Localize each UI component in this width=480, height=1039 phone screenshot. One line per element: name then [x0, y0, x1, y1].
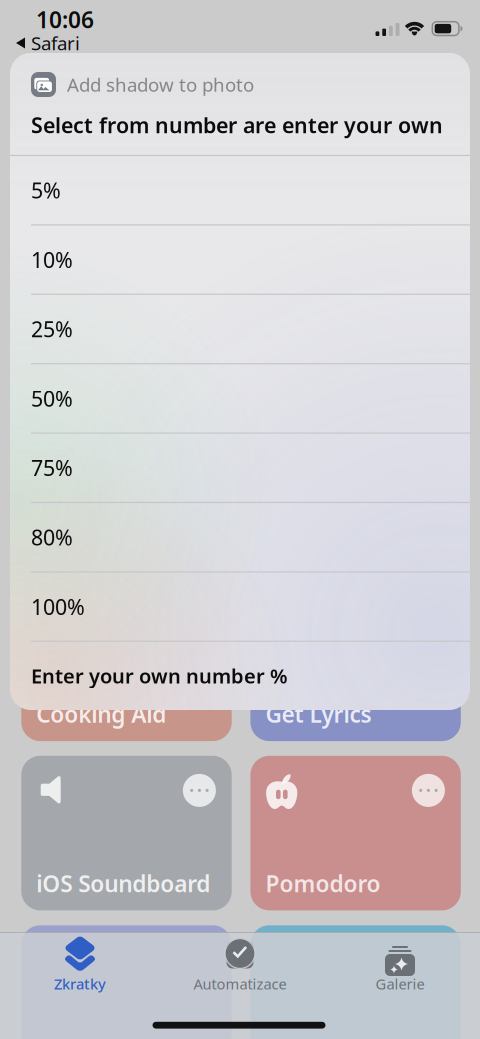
staticText: 50% — [31, 384, 73, 412]
button[interactable]: 25% — [10, 294, 470, 364]
button[interactable]: Zkratky — [4, 938, 156, 996]
staticText: 5% — [31, 176, 61, 204]
staticText: Cooking Aid — [36, 699, 166, 729]
button[interactable]: Automatizace — [164, 938, 316, 996]
button[interactable]: 75% — [10, 433, 470, 502]
button[interactable]: 80% — [10, 502, 470, 572]
staticText: Select from number are enter your own — [31, 111, 443, 139]
staticText: Get Lyrics — [265, 699, 371, 729]
staticText: Galerie — [375, 974, 424, 993]
staticText: 25% — [31, 315, 73, 343]
staticText: Add shadow to photo — [67, 72, 254, 97]
staticText: 75% — [31, 454, 73, 482]
staticText: 10:06 — [36, 4, 94, 34]
staticText: 100% — [31, 592, 85, 621]
button[interactable]: Enter your own number % — [10, 641, 470, 710]
button[interactable]: Galerie — [324, 938, 476, 996]
staticText: iOS Soundboard — [36, 868, 210, 898]
button[interactable]: Safari — [0, 32, 480, 54]
staticText: Enter your own number % — [31, 662, 288, 689]
button[interactable]: 10% — [10, 225, 470, 294]
staticText: Pomodoro — [265, 868, 380, 898]
button[interactable]: 5% — [10, 155, 470, 225]
button[interactable]: 100% — [10, 572, 470, 641]
staticText: 10% — [31, 245, 73, 274]
staticText: Safari — [31, 31, 80, 55]
staticText: Automatizace — [193, 974, 286, 993]
staticText: Zkratky — [54, 974, 106, 993]
button[interactable]: 50% — [10, 364, 470, 433]
staticText: 80% — [31, 523, 73, 551]
